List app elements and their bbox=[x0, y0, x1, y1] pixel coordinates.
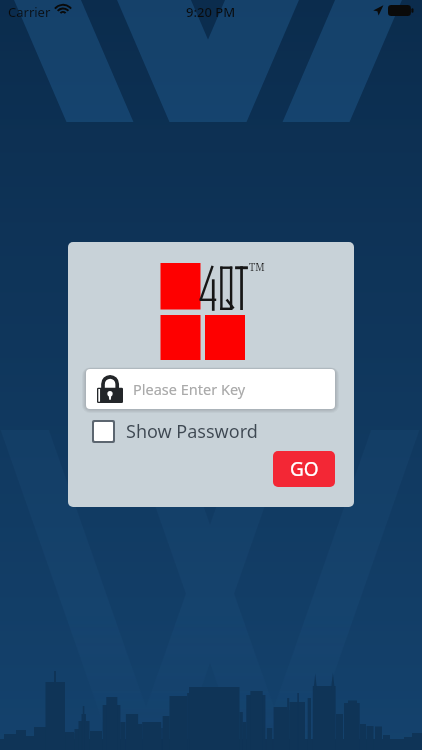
staticText: Carrier bbox=[8, 3, 51, 21]
staticText: Please Enter Key bbox=[133, 379, 246, 399]
staticText: TM bbox=[249, 260, 265, 274]
staticText: GO bbox=[290, 456, 319, 482]
staticText: Show Password bbox=[126, 419, 258, 444]
staticText: 9:20 PM bbox=[186, 3, 236, 21]
button[interactable]: Show Password bbox=[92, 418, 258, 444]
button[interactable]: Please Enter Key bbox=[86, 369, 335, 409]
button[interactable]: GO bbox=[273, 451, 335, 487]
